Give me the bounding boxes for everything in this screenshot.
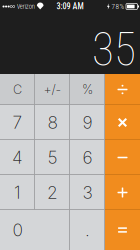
button[interactable]: 9 — [70, 105, 105, 140]
button[interactable]: 7 — [0, 105, 35, 140]
button[interactable]: 6 — [70, 140, 105, 175]
button[interactable]: Subtract — [105, 140, 140, 175]
button[interactable]: % — [70, 74, 105, 105]
button[interactable]: 5 — [35, 140, 70, 175]
staticText: 35 — [92, 23, 136, 76]
button[interactable]: 0 — [0, 210, 70, 250]
staticText: 0 — [12, 219, 22, 240]
button[interactable]: Multiply — [105, 105, 140, 140]
button[interactable]: Equals — [105, 210, 140, 250]
staticText: 8 — [47, 112, 57, 133]
button[interactable]: 4 — [0, 140, 35, 175]
button[interactable]: Add — [105, 175, 140, 210]
staticText: C — [13, 82, 22, 97]
staticText: 3:09 AM — [56, 2, 83, 11]
staticText: 9 — [82, 112, 92, 133]
staticText: 2 — [47, 182, 58, 203]
button[interactable]: . — [70, 210, 105, 250]
staticText: 7 — [12, 112, 22, 133]
button[interactable]: 3 — [70, 175, 105, 210]
staticText: 4 — [12, 147, 23, 168]
staticText: 1 — [14, 182, 21, 203]
staticText: 78% — [111, 2, 124, 11]
staticText: . — [85, 219, 90, 240]
button[interactable]: 2 — [35, 175, 70, 210]
staticText: +/- — [43, 82, 61, 97]
button[interactable]: +/- — [35, 74, 70, 105]
staticText: Verizon — [17, 3, 35, 10]
button[interactable]: 1 — [0, 175, 35, 210]
staticText: 3 — [82, 182, 92, 203]
staticText: % — [82, 82, 93, 97]
button[interactable]: C — [0, 74, 35, 105]
staticText: 5 — [47, 147, 57, 168]
button[interactable]: Divide — [105, 74, 140, 105]
staticText: 6 — [82, 147, 92, 168]
button[interactable]: 8 — [35, 105, 70, 140]
